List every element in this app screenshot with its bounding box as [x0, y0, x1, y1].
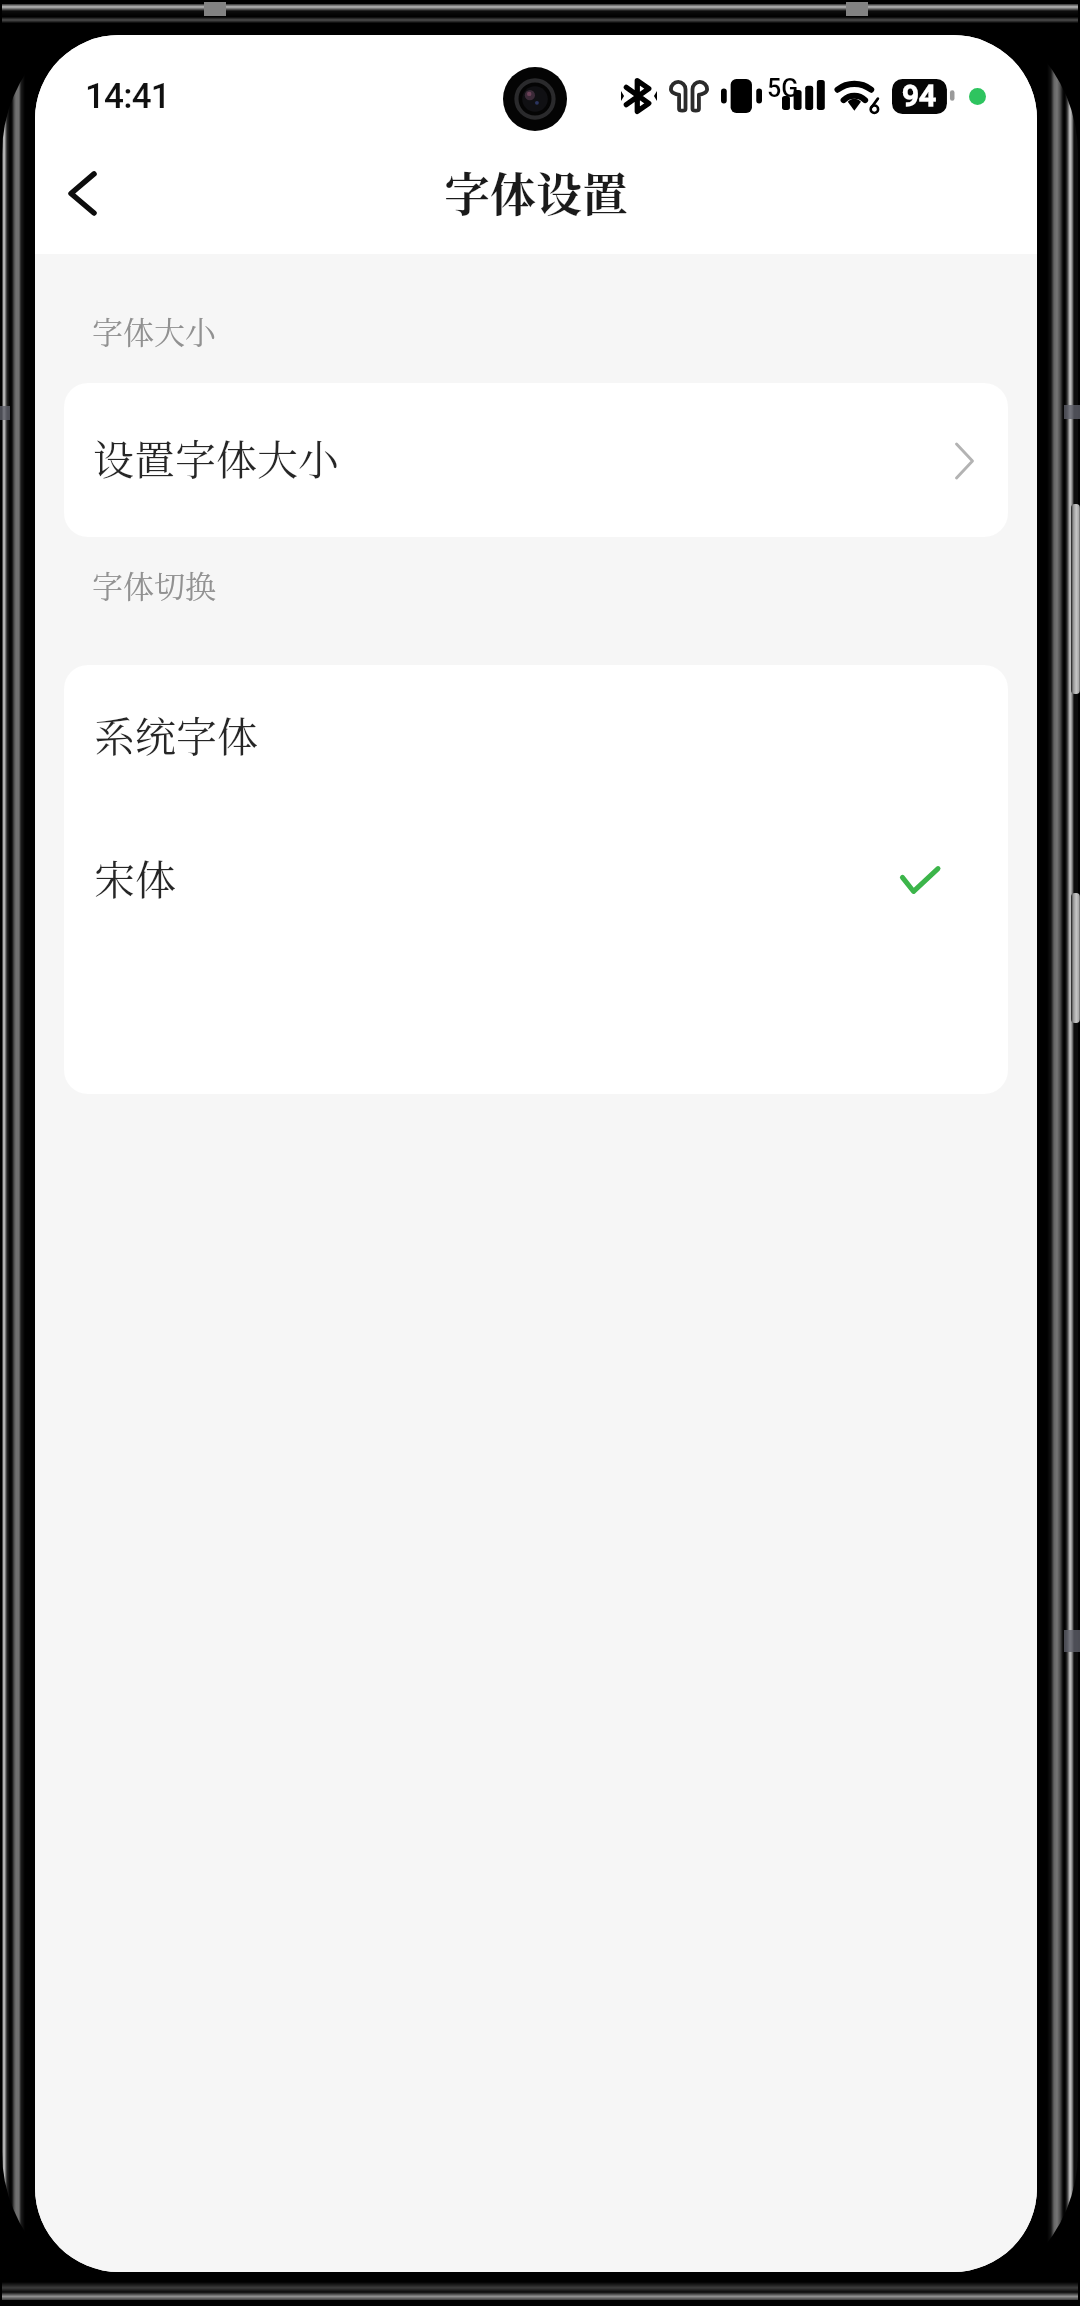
staticText: 14:41 — [85, 76, 170, 117]
staticText: 宋体 — [94, 848, 176, 907]
button[interactable]: Back — [35, 132, 165, 254]
staticText: 字体大小 — [92, 308, 216, 353]
button[interactable]: 系统字体 — [64, 665, 1008, 807]
staticText: 94 — [902, 78, 937, 113]
staticText: 字体切换 — [92, 562, 216, 607]
staticText: 5G — [767, 74, 799, 103]
staticText: 系统字体 — [94, 705, 258, 764]
button[interactable]: 设置字体大小 — [64, 383, 1008, 537]
staticText: 设置字体大小 — [93, 428, 339, 487]
button[interactable]: 宋体 — [64, 807, 1008, 953]
staticText: 字体设置 — [35, 158, 1037, 224]
